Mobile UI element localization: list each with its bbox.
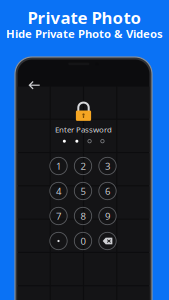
staticText: 8 bbox=[80, 209, 85, 223]
button[interactable]: 2 bbox=[71, 153, 95, 178]
button[interactable]: 9 bbox=[95, 203, 120, 228]
button[interactable]: 7 bbox=[46, 203, 71, 228]
button[interactable]: 1 bbox=[46, 153, 71, 178]
staticText: Enter Password bbox=[55, 124, 112, 135]
staticText: Private Photo bbox=[27, 6, 141, 29]
button[interactable]: Delete bbox=[95, 228, 120, 253]
staticText: 3 bbox=[105, 159, 110, 173]
button[interactable]: Back bbox=[23, 75, 45, 95]
staticText: 7 bbox=[56, 209, 61, 223]
button[interactable]: 3 bbox=[95, 153, 120, 178]
staticText: 0 bbox=[80, 234, 85, 248]
staticText: 6 bbox=[105, 184, 110, 198]
button[interactable]: 0 bbox=[71, 228, 95, 253]
button[interactable]: 6 bbox=[95, 178, 120, 203]
staticText: 5 bbox=[80, 184, 85, 198]
button[interactable]: Biometric unlock bbox=[46, 228, 71, 253]
button[interactable]: 5 bbox=[71, 178, 95, 203]
staticText: 2 bbox=[80, 159, 85, 173]
staticText: 1 bbox=[56, 159, 61, 173]
button[interactable]: 4 bbox=[46, 178, 71, 203]
button[interactable]: 8 bbox=[71, 203, 95, 228]
staticText: 4 bbox=[56, 184, 61, 198]
staticText: 9 bbox=[105, 209, 110, 223]
staticText: Hide Private Photo & Videos bbox=[6, 26, 163, 41]
